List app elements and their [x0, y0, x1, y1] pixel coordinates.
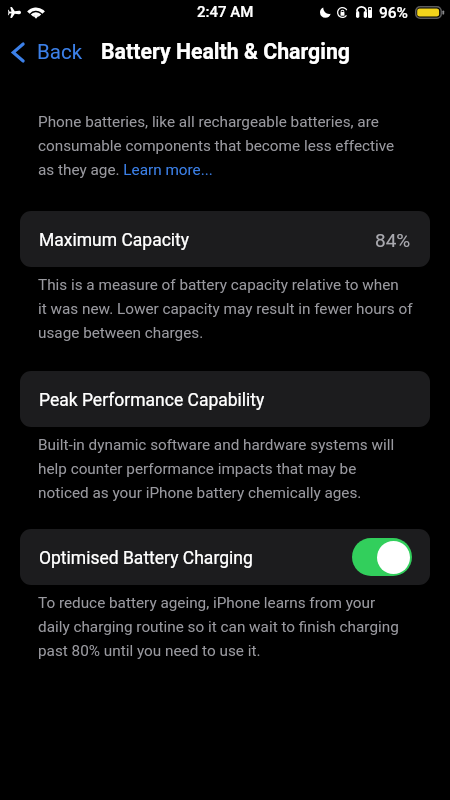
staticText: Peak Performance Capability	[39, 390, 265, 411]
staticText: 84%	[375, 229, 411, 251]
button[interactable]: Maximum Capacity	[20, 211, 430, 267]
staticText: Optimised Battery Charging	[39, 548, 253, 569]
staticText: Maximum Capacity	[39, 230, 190, 251]
button[interactable]: Learn more	[121, 160, 211, 182]
staticText: Back	[37, 40, 83, 64]
staticText: 96%	[379, 4, 409, 22]
button[interactable]: Peak Performance Capability	[20, 371, 430, 427]
button[interactable]: Optimised Battery Charging, on	[352, 538, 412, 576]
staticText: 2:47 AM	[197, 3, 254, 21]
staticText: Built-in dynamic software and hardware s…	[38, 436, 395, 502]
staticText: This is a measure of battery capacity re…	[38, 276, 413, 342]
staticText: Battery Health & Charging	[101, 39, 351, 64]
button[interactable]: Back	[0, 35, 91, 69]
staticText: To reduce battery ageing, iPhone learns …	[38, 594, 399, 660]
staticText: Phone batteries, like all rechargeable b…	[38, 113, 395, 179]
button[interactable]: Optimised Battery Charging	[20, 529, 430, 585]
